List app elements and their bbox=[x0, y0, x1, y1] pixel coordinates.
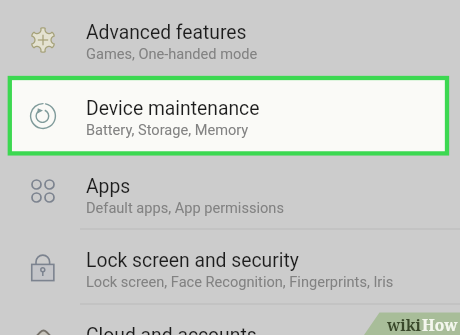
button[interactable]: Cloud and accounts bbox=[86, 324, 257, 335]
staticText: Battery, Storage, Memory bbox=[86, 121, 249, 138]
button[interactable]: Device maintenance bbox=[86, 97, 260, 138]
staticText: Advanced features bbox=[86, 21, 247, 44]
staticText: Apps bbox=[86, 175, 131, 198]
button[interactable]: Apps bbox=[86, 175, 284, 216]
staticText: Games, One-handed mode bbox=[86, 45, 258, 62]
button[interactable]: Advanced features bbox=[86, 21, 258, 62]
staticText: Lock screen and security bbox=[86, 249, 299, 272]
staticText: Default apps, App permissions bbox=[86, 199, 284, 216]
staticText: How bbox=[422, 314, 458, 335]
staticText: Cloud and accounts bbox=[86, 324, 257, 335]
staticText: Device maintenance bbox=[86, 97, 260, 120]
staticText: wiki bbox=[387, 314, 422, 335]
staticText: Lock screen, Face Recognition, Fingerpri… bbox=[86, 273, 394, 290]
button[interactable]: Lock screen and security bbox=[86, 249, 394, 290]
